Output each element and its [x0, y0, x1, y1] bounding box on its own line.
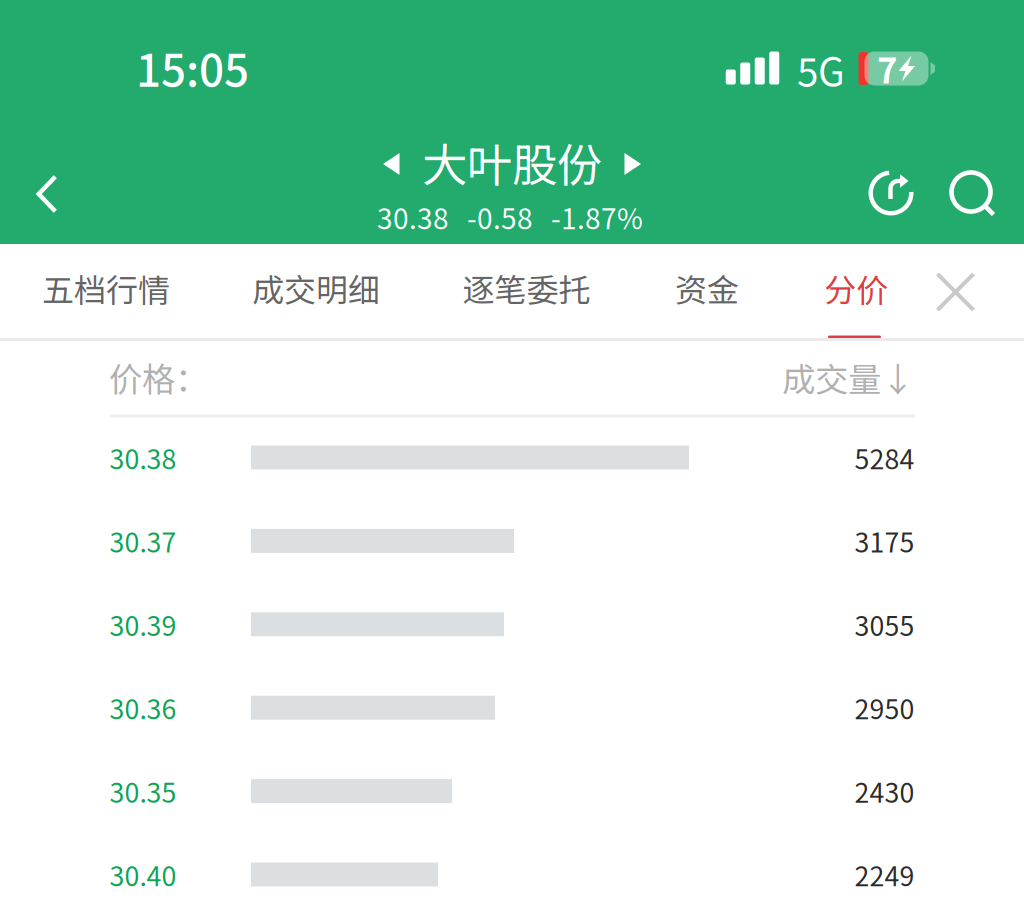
staticText: 2950 — [854, 688, 914, 727]
staticText: 价格： — [109, 353, 208, 401]
staticText: 30.38 -0.58 -1.87% — [377, 197, 643, 237]
button[interactable]: 分价 — [781, 240, 931, 336]
staticText: 五档行情 — [42, 265, 170, 311]
staticText: 30.39 — [109, 605, 176, 644]
button[interactable]: 五档行情 — [31, 240, 181, 336]
staticText: 逐笔委托 — [462, 265, 590, 311]
staticText: 2249 — [854, 855, 914, 894]
staticText: 成交明细 — [252, 265, 380, 311]
staticText: 30.37 — [109, 522, 176, 560]
staticText: 5G — [797, 41, 845, 97]
staticText: 资金 — [675, 265, 739, 311]
staticText: 5284 — [854, 438, 914, 477]
staticText: 30.38 — [109, 438, 176, 477]
button[interactable]: 成交明细 — [241, 240, 391, 336]
staticText: 3175 — [854, 522, 914, 560]
staticText: 大叶股份 — [422, 129, 602, 195]
button[interactable]: Close — [922, 245, 988, 339]
staticText: 30.35 — [109, 772, 176, 810]
button[interactable]: 资金 — [632, 240, 782, 336]
staticText: 分价 — [824, 265, 888, 311]
staticText: 30.36 — [109, 688, 176, 727]
button[interactable]: 逐笔委托 — [451, 240, 601, 336]
staticText: 15:05 — [136, 36, 249, 99]
button[interactable]: Next stock — [611, 142, 653, 186]
staticText: 成交量↓ — [782, 353, 914, 402]
staticText: 2430 — [854, 772, 914, 810]
button[interactable]: Search — [942, 155, 1002, 231]
staticText: 7 — [877, 43, 897, 94]
staticText: 30.40 — [109, 855, 176, 894]
button[interactable]: Refresh — [861, 155, 921, 231]
button[interactable]: Previous stock — [370, 142, 412, 186]
button[interactable]: Back — [6, 150, 88, 238]
staticText: 3055 — [854, 605, 914, 644]
